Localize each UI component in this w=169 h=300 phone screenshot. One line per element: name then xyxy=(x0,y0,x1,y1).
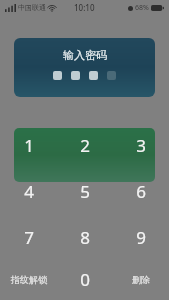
staticText: 指纹解锁 xyxy=(11,274,47,285)
staticText: 5 xyxy=(80,180,90,203)
button[interactable]: 9 xyxy=(113,223,169,251)
staticText: 4 xyxy=(24,180,34,203)
button[interactable]: 5 xyxy=(57,177,113,205)
button[interactable]: 4 xyxy=(0,177,57,205)
staticText: 0 xyxy=(80,268,90,291)
staticText: 9 xyxy=(136,226,146,249)
button[interactable]: 8 xyxy=(57,223,113,251)
button[interactable]: 1 xyxy=(0,131,57,159)
button[interactable]: 3 xyxy=(113,131,169,159)
button[interactable]: 6 xyxy=(113,177,169,205)
button[interactable]: 2 xyxy=(57,131,113,159)
staticText: 输入密码 xyxy=(63,48,107,62)
staticText: 2 xyxy=(80,134,90,157)
button[interactable]: 删除 xyxy=(113,265,169,293)
staticText: 8 xyxy=(80,226,90,249)
staticText: 68% xyxy=(135,3,149,13)
staticText: 1 xyxy=(24,134,34,157)
staticText: 10:10 xyxy=(74,2,95,13)
button[interactable]: 0 xyxy=(57,265,113,293)
button[interactable]: 指纹解锁 xyxy=(0,265,57,293)
staticText: 6 xyxy=(136,180,146,203)
staticText: 3 xyxy=(136,134,146,157)
button[interactable]: 7 xyxy=(0,223,57,251)
staticText: 删除 xyxy=(132,274,150,285)
staticText: 7 xyxy=(24,226,34,249)
staticText: 中国联通 xyxy=(18,3,46,12)
